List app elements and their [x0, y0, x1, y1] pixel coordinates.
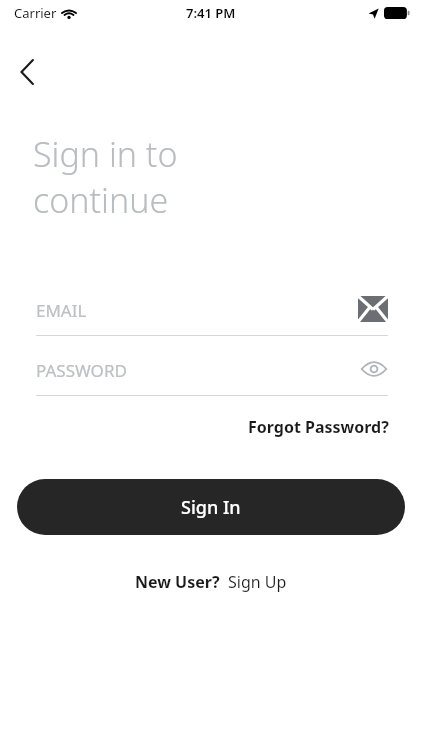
- button[interactable]: Back: [6, 51, 48, 93]
- staticText: Sign In: [181, 495, 241, 520]
- staticText: continue: [33, 177, 169, 223]
- staticText: PASSWORD: [36, 359, 127, 382]
- staticText: New User?: [135, 571, 220, 593]
- button[interactable]: EMAIL: [36, 292, 388, 336]
- button[interactable]: PASSWORD: [36, 352, 388, 396]
- button[interactable]: New User?: [0, 566, 422, 598]
- staticText: Forgot Password?: [248, 416, 389, 438]
- button[interactable]: Show password: [360, 358, 388, 380]
- staticText: Sign Up: [228, 571, 287, 593]
- button[interactable]: Sign In: [17, 479, 405, 535]
- button[interactable]: Forgot Password?: [225, 412, 389, 442]
- staticText: 7:41 PM: [186, 4, 236, 22]
- other: Email: [358, 296, 388, 322]
- staticText: Carrier: [14, 4, 57, 22]
- staticText: Sign in to: [33, 131, 178, 177]
- staticText: EMAIL: [36, 299, 87, 322]
